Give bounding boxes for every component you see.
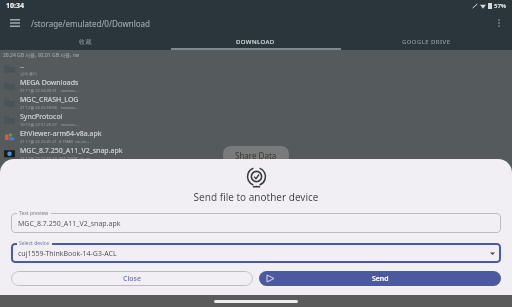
staticText: MGC_8.7.250_A11_V2_snap.apk	[20, 146, 123, 156]
staticText: 57%	[494, 2, 507, 10]
staticText: 20.24 GB 사용, 92.01 GB 사용, rw	[3, 52, 79, 59]
button[interactable]: MGC_8.7.250_A11_V2_snap.apk	[11, 213, 501, 233]
button[interactable]: Open navigation drawer	[6, 14, 24, 32]
button[interactable]: 收藏	[0, 34, 170, 50]
button[interactable]: MGC_8.7.250_A11_V2_snap.apk	[0, 145, 512, 162]
staticText: ..	[20, 61, 24, 71]
staticText: MEGA Downloads	[20, 78, 79, 88]
button[interactable]: GOOGLE DRIVE	[341, 34, 512, 50]
staticText: DOWNLOAD	[236, 38, 275, 46]
staticText: GOOGLE DRIVE	[402, 38, 451, 46]
staticText: Send	[372, 274, 389, 284]
staticText: MGC_8.7.250_A11_V2_snap.apk	[18, 219, 121, 229]
button[interactable]: EhViewer-arm64-v8a.apk	[0, 128, 512, 145]
button[interactable]: DOWNLOAD	[170, 34, 341, 50]
button[interactable]: More options	[490, 14, 508, 32]
staticText: MGC_CRASH_LOG	[20, 95, 79, 105]
staticText: Text preview	[19, 210, 49, 217]
staticText: 27 12월 23 23:59:58 rwxrwx---	[20, 105, 79, 110]
staticText: 收藏	[79, 38, 92, 46]
button[interactable]: Share Data	[223, 146, 289, 165]
button[interactable]: Send	[259, 271, 501, 286]
staticText: Close	[123, 274, 142, 284]
staticText: Select device	[19, 240, 50, 247]
button[interactable]: Close	[11, 271, 253, 286]
staticText: 10 12월 23 01:25:27 rwxrwx---	[20, 122, 79, 127]
staticText: cuj1559-ThinkBook-14-G3-ACL	[18, 249, 117, 259]
staticText: 21 11월 22 23:41:21 4.19MB rw-rw----	[20, 139, 92, 144]
staticText: 27 12월 23 23:58:34 366.76MB rw-rw-	[20, 156, 92, 161]
button[interactable]: SyncProtocol	[0, 111, 512, 128]
staticText: 10:34	[6, 1, 24, 11]
staticText: SyncProtocol	[20, 112, 63, 122]
button[interactable]: MEGA Downloads	[0, 77, 512, 94]
staticText: EhViewer-arm64-v8a.apk	[20, 129, 102, 139]
staticText: Send file to another device	[0, 190, 512, 204]
button[interactable]: cuj1559-ThinkBook-14-G3-ACL	[11, 243, 501, 263]
staticText: /storage/emulated/0/Download	[31, 18, 150, 29]
staticText: Share Data	[235, 150, 277, 161]
staticText: 27 11월 22 04:09:31 rwxrwx---	[20, 88, 79, 93]
button[interactable]: MGC_CRASH_LOG	[0, 94, 512, 111]
staticText: 상위 폴더	[20, 71, 38, 76]
